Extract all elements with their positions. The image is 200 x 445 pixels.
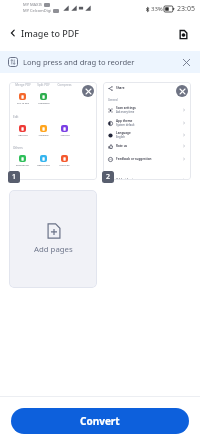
staticText: App theme — [116, 119, 133, 123]
staticText: Split PDF — [37, 83, 50, 87]
staticText: Templates — [38, 102, 50, 105]
button[interactable]: Share — [103, 82, 191, 180]
staticText: Feedback or suggestion — [116, 157, 152, 161]
staticText: Language — [116, 131, 131, 135]
button[interactable]: Back — [8, 27, 80, 39]
staticText: General — [108, 98, 118, 102]
staticText: Edit text — [18, 134, 28, 137]
staticText: Convert — [80, 414, 120, 428]
staticText: 23:05 — [177, 4, 195, 14]
staticText: Ask every time — [116, 110, 135, 114]
staticText: Image to PDF — [21, 27, 80, 39]
staticText: Reorder file — [16, 164, 29, 167]
button[interactable]: Remove page — [82, 85, 94, 97]
staticText: Others — [13, 146, 23, 150]
staticText: MY CelcomDigi — [23, 8, 52, 13]
staticText: 1 — [12, 172, 17, 182]
staticText: Import files — [37, 164, 50, 167]
staticText: Merge PDF — [15, 83, 31, 87]
staticText: Compress — [57, 83, 72, 87]
staticText: Long press and drag to reorder — [23, 57, 135, 67]
staticText: 33% — [151, 5, 163, 13]
staticText: Rate us — [116, 144, 128, 148]
button[interactable]: Remove page — [176, 85, 188, 97]
staticText: Add pages — [34, 244, 73, 255]
staticText: System default — [116, 123, 135, 127]
staticText: PPT to PDF — [17, 102, 29, 105]
staticText: Print PDF — [59, 164, 70, 167]
staticText: Add text — [60, 134, 70, 137]
staticText: English — [116, 135, 125, 139]
staticText: Scan settings — [116, 106, 136, 110]
staticText: 2 — [106, 172, 111, 182]
other: Back — [8, 28, 18, 38]
staticText: Add widget — [116, 178, 133, 180]
staticText: Share — [116, 86, 125, 90]
staticText: MY MAXIS — [23, 2, 43, 7]
button[interactable]: Convert — [11, 408, 189, 434]
staticText: Annotate — [38, 134, 49, 137]
button[interactable]: Add pages — [9, 190, 97, 288]
button[interactable]: Merge PDF — [9, 82, 97, 180]
button[interactable]: Dismiss — [180, 56, 192, 68]
button[interactable]: Add file — [174, 25, 192, 43]
staticText: Edit — [13, 115, 19, 119]
